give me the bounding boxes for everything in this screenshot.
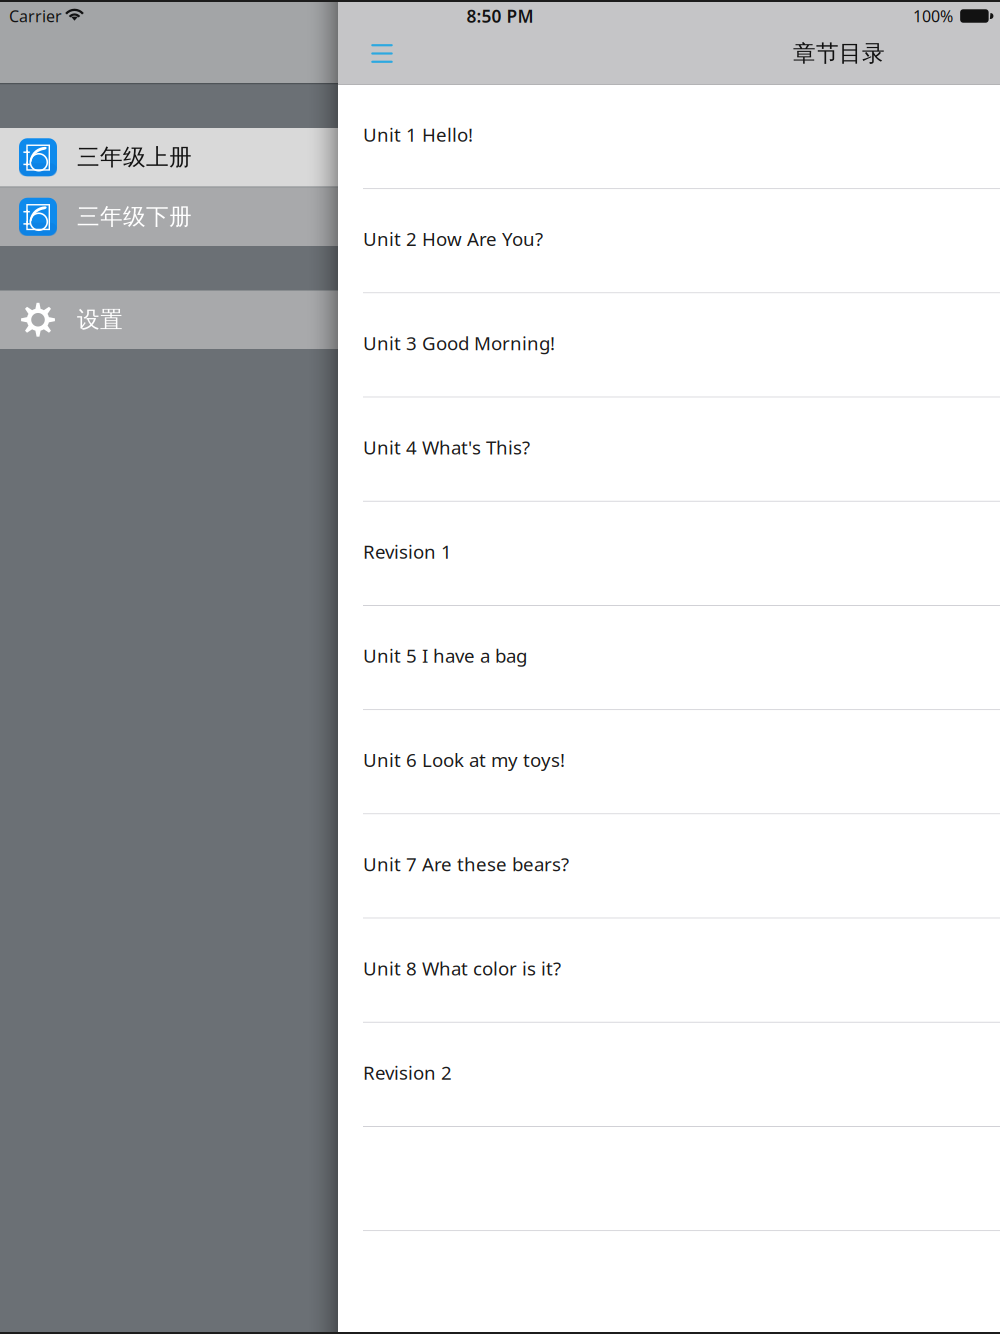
staticText: Revision 1: [363, 539, 452, 564]
button[interactable]: Menu: [341, 31, 404, 75]
button[interactable]: Unit 3 Good Morning!: [338, 293, 1000, 398]
button[interactable]: Revision 2: [338, 1023, 1000, 1127]
button[interactable]: Unit 4 What's This?: [338, 398, 1000, 502]
button[interactable]: Unit 1 Hello!: [338, 85, 1000, 189]
staticText: Unit 7 Are these bears?: [363, 852, 569, 876]
button[interactable]: Unit 7 Are these bears?: [338, 814, 1000, 919]
button[interactable]: Unit 6 Look at my toys!: [338, 710, 1000, 814]
staticText: 100%: [913, 5, 953, 27]
staticText: 三年级上册: [77, 143, 192, 171]
staticText: 8:50 PM: [466, 4, 533, 27]
button[interactable]: Unit 8 What color is it?: [338, 919, 1000, 1023]
button[interactable]: Unit 2 How Are You?: [338, 189, 1000, 293]
staticText: Unit 2 How Are You?: [363, 226, 543, 251]
staticText: Unit 5 I have a bag: [363, 643, 527, 668]
staticText: Revision 2: [363, 1060, 452, 1085]
staticText: 章节目录: [793, 40, 885, 67]
button[interactable]: Revision 1: [338, 502, 1000, 606]
staticText: Unit 6 Look at my toys!: [363, 747, 565, 772]
staticText: Unit 1 Hello!: [363, 122, 473, 147]
button[interactable]: 三年级下册: [0, 187, 338, 246]
staticText: Carrier: [9, 5, 62, 27]
staticText: Unit 3 Good Morning!: [363, 331, 555, 355]
staticText: Unit 8 What color is it?: [363, 956, 561, 981]
staticText: 设置: [77, 306, 123, 334]
button[interactable]: Unit 5 I have a bag: [338, 606, 1000, 710]
staticText: Unit 4 What's This?: [363, 435, 530, 460]
button[interactable]: 设置: [0, 290, 338, 349]
button[interactable]: 三年级上册: [0, 128, 338, 186]
staticText: 三年级下册: [77, 203, 192, 231]
